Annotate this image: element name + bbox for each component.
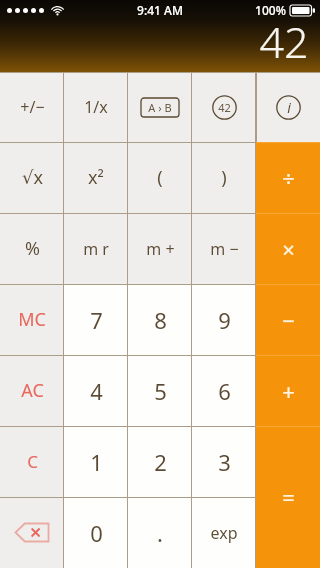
staticText: m −: [210, 238, 239, 260]
button[interactable]: MC: [0, 284, 64, 355]
staticText: MC: [18, 307, 46, 332]
button[interactable]: −: [256, 284, 320, 355]
staticText: +: [282, 376, 295, 406]
staticText: 8: [154, 305, 167, 335]
button[interactable]: 6: [192, 355, 256, 426]
button[interactable]: ÷: [256, 142, 320, 213]
staticText: 9: [218, 305, 231, 335]
button[interactable]: C: [0, 426, 64, 497]
button[interactable]: 9: [192, 284, 256, 355]
button[interactable]: 1: [64, 426, 128, 497]
staticText: 42: [259, 12, 309, 71]
staticText: ×: [282, 234, 295, 264]
button[interactable]: AC: [0, 355, 64, 426]
staticText: C: [27, 450, 38, 473]
button[interactable]: +: [256, 355, 320, 426]
staticText: .: [157, 518, 163, 548]
staticText: 2: [154, 447, 167, 477]
button[interactable]: 5: [128, 355, 192, 426]
staticText: −: [282, 305, 295, 335]
staticText: 6: [218, 376, 231, 406]
staticText: 9:41 AM: [137, 2, 183, 18]
button[interactable]: 1/x: [64, 72, 128, 142]
button[interactable]: m r: [64, 213, 128, 284]
staticText: 1: [90, 447, 103, 477]
button[interactable]: exp: [192, 497, 256, 568]
button[interactable]: 4: [64, 355, 128, 426]
staticText: =: [282, 482, 295, 512]
button[interactable]: 8: [128, 284, 192, 355]
button[interactable]: +/−: [0, 72, 64, 142]
button[interactable]: √x: [0, 142, 64, 213]
button[interactable]: Backspace: [0, 497, 64, 568]
button[interactable]: ): [192, 142, 256, 213]
button[interactable]: =: [256, 426, 320, 568]
button[interactable]: m −: [192, 213, 256, 284]
button[interactable]: m +: [128, 213, 192, 284]
staticText: x²: [88, 165, 104, 190]
staticText: 0: [90, 518, 103, 548]
staticText: 1/x: [84, 96, 108, 118]
staticText: i: [287, 98, 291, 117]
staticText: (: [157, 165, 163, 190]
staticText: 7: [90, 305, 103, 335]
button[interactable]: Info: [256, 72, 320, 142]
staticText: A › B: [148, 100, 172, 115]
button[interactable]: Convert A to B: [128, 72, 192, 142]
button[interactable]: 2: [128, 426, 192, 497]
staticText: 5: [154, 376, 167, 406]
staticText: AC: [21, 378, 44, 403]
button[interactable]: .: [128, 497, 192, 568]
staticText: 42: [218, 100, 231, 115]
button[interactable]: x²: [64, 142, 128, 213]
staticText: √x: [22, 165, 43, 190]
staticText: 3: [218, 447, 231, 477]
staticText: exp: [210, 522, 238, 544]
button[interactable]: 0: [64, 497, 128, 568]
staticText: m +: [146, 238, 175, 260]
button[interactable]: ×: [256, 213, 320, 284]
staticText: %: [25, 236, 40, 261]
staticText: m r: [83, 238, 109, 260]
staticText: 100%: [255, 2, 286, 18]
staticText: ): [221, 165, 227, 190]
button[interactable]: %: [0, 213, 64, 284]
button[interactable]: 7: [64, 284, 128, 355]
staticText: +/−: [20, 96, 45, 118]
staticText: 4: [90, 376, 103, 406]
button[interactable]: 3: [192, 426, 256, 497]
button[interactable]: (: [128, 142, 192, 213]
button[interactable]: Recall 42: [192, 72, 256, 142]
staticText: ÷: [282, 163, 295, 193]
